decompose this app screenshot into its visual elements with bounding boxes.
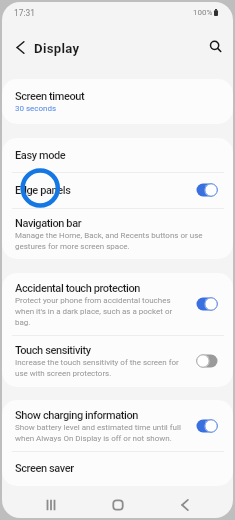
button[interactable]: Accidental touch protection xyxy=(2,273,233,335)
button[interactable]: Edge panels xyxy=(2,172,233,208)
button[interactable]: Screen timeout xyxy=(2,79,233,124)
staticText: Easy mode xyxy=(15,149,66,162)
button[interactable]: Toggle on xyxy=(196,183,218,197)
staticText: 30 seconds xyxy=(15,104,57,113)
button[interactable]: Easy mode xyxy=(2,138,233,172)
button[interactable]: Recents xyxy=(17,491,84,518)
button[interactable]: Toggle on xyxy=(196,297,218,311)
button[interactable]: Back xyxy=(151,491,218,518)
staticText: 100% xyxy=(193,8,213,17)
button[interactable]: Home xyxy=(84,491,151,518)
staticText: Screen saver xyxy=(15,462,74,475)
staticText: Show charging information xyxy=(15,409,139,422)
staticText: Screen timeout xyxy=(15,90,85,103)
staticText: Manage the Home, Back, and Recents butto… xyxy=(15,231,218,251)
staticText: Show battery level and estimated time un… xyxy=(15,423,188,443)
staticText: Touch sensitivity xyxy=(15,344,91,357)
button[interactable]: Touch sensitivity xyxy=(2,335,233,387)
staticText: Accidental touch protection xyxy=(15,282,141,295)
button[interactable]: Toggle on xyxy=(196,419,218,433)
staticText: Protect your phone from accidental touch… xyxy=(15,296,188,327)
staticText: Display xyxy=(34,41,80,56)
button[interactable]: Search xyxy=(203,34,229,60)
button[interactable]: Toggle off xyxy=(196,354,218,368)
staticText: Navigation bar xyxy=(15,217,82,230)
button[interactable]: Show charging information xyxy=(2,400,233,451)
staticText: Edge panels xyxy=(15,184,71,197)
staticText: Increase the touch sensitivity of the sc… xyxy=(15,358,188,378)
button[interactable]: Navigation bar xyxy=(2,208,233,259)
button[interactable]: Screen saver xyxy=(2,451,233,486)
staticText: 17:31 xyxy=(14,8,35,18)
button[interactable]: Back xyxy=(7,34,33,60)
